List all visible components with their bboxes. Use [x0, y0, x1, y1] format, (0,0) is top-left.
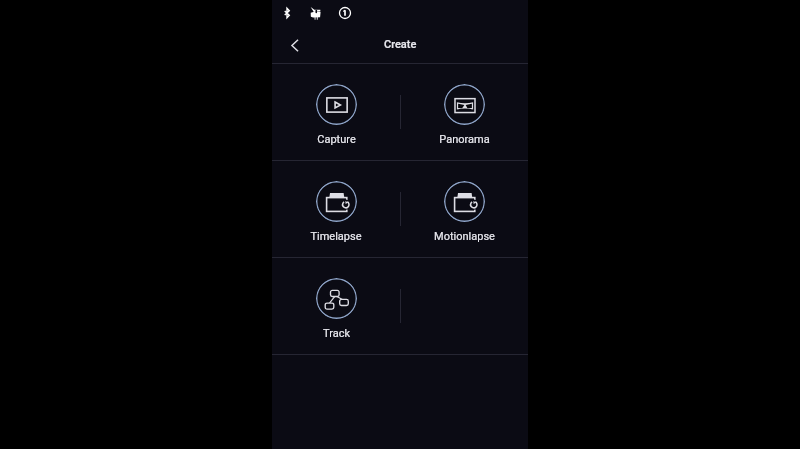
button[interactable]: Capture — [272, 64, 400, 160]
staticText: Panorama — [439, 133, 490, 146]
button[interactable]: Timelapse — [272, 161, 400, 257]
staticText: Capture — [317, 133, 356, 146]
staticText: Track — [323, 327, 350, 340]
staticText: Create — [384, 38, 417, 51]
staticText: Timelapse — [310, 230, 362, 243]
button[interactable]: Track — [272, 258, 400, 354]
button[interactable]: Motionlapse — [400, 161, 528, 257]
button[interactable]: Back — [282, 32, 308, 58]
staticText: Motionlapse — [434, 230, 495, 243]
button[interactable]: Panorama — [400, 64, 528, 160]
